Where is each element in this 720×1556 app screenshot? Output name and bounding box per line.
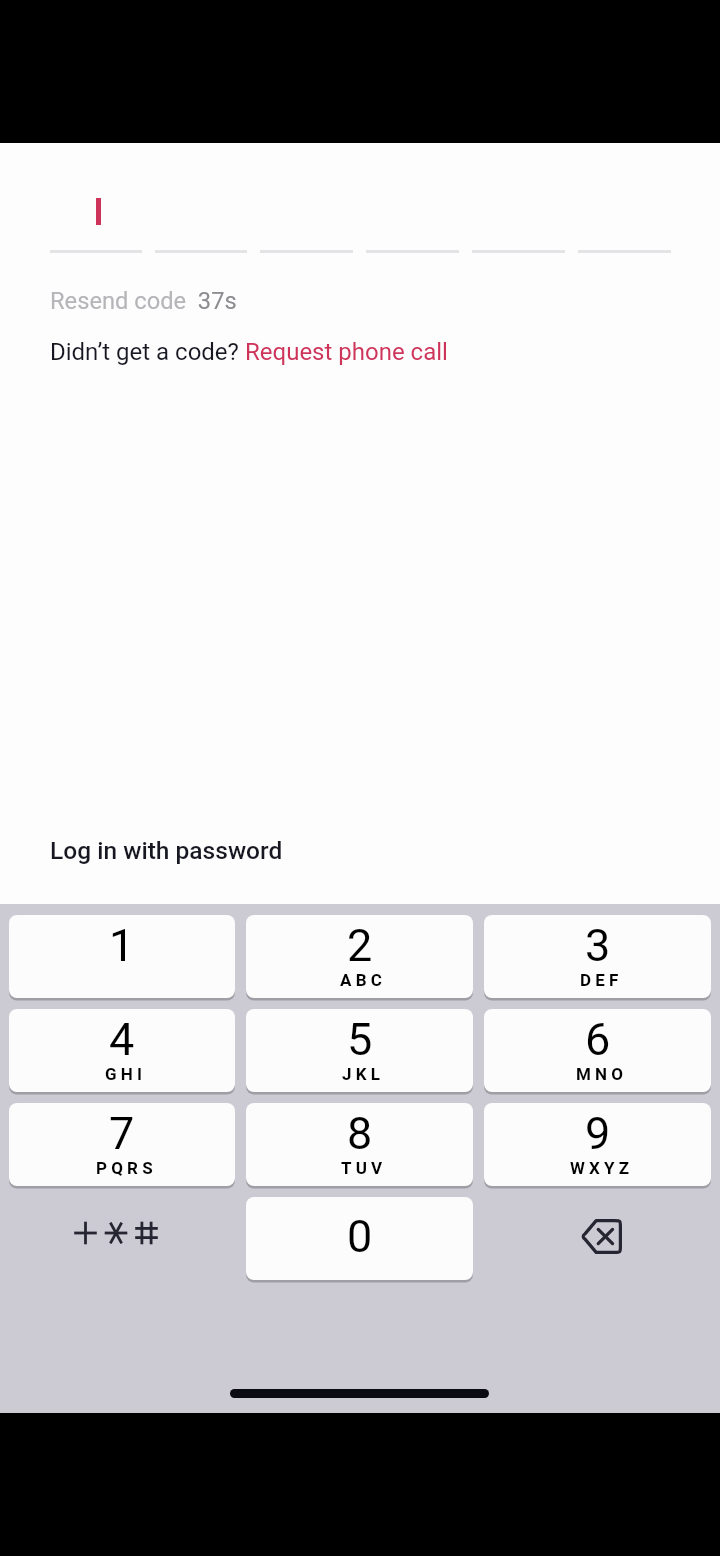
button[interactable]: 0: [246, 1197, 473, 1280]
button[interactable]: 3: [484, 915, 711, 998]
staticText: 0: [347, 1210, 373, 1263]
button[interactable]: 5: [246, 1009, 473, 1092]
button[interactable]: Request phone call: [245, 338, 448, 366]
button[interactable]: 1: [9, 915, 235, 998]
button[interactable]: Plus, star, hash: [9, 1197, 235, 1280]
staticText: 8: [347, 1107, 373, 1160]
button[interactable]: Log in with password: [50, 836, 283, 865]
staticText: 1: [109, 919, 135, 972]
button[interactable]: Resend code 37s: [50, 287, 237, 315]
button[interactable]: 2: [246, 915, 473, 998]
button[interactable]: 6: [484, 1009, 711, 1092]
button[interactable]: 9: [484, 1103, 711, 1186]
staticText: DEF: [580, 970, 623, 990]
staticText: 9: [585, 1107, 611, 1160]
staticText: WXYZ: [570, 1158, 634, 1178]
staticText: Log in with password: [50, 836, 283, 865]
staticText: 4: [109, 1013, 135, 1066]
staticText: TUV: [341, 1158, 387, 1178]
staticText: 3: [585, 919, 611, 972]
staticText: ABC: [340, 970, 387, 990]
staticText: Resend code 37s: [50, 287, 237, 315]
staticText: GHI: [105, 1064, 147, 1084]
staticText: Didn’t get a code?: [50, 338, 245, 366]
staticText: 2: [347, 919, 373, 972]
staticText: MNO: [576, 1064, 628, 1084]
button[interactable]: 8: [246, 1103, 473, 1186]
button[interactable]: Backspace: [484, 1197, 711, 1280]
button[interactable]: 7: [9, 1103, 235, 1186]
staticText: 5: [347, 1013, 373, 1066]
staticText: Request phone call: [245, 338, 448, 366]
button[interactable]: 4: [9, 1009, 235, 1092]
staticText: 6: [585, 1013, 611, 1066]
staticText: PQRS: [96, 1158, 157, 1178]
staticText: 7: [109, 1107, 135, 1160]
staticText: JKL: [342, 1064, 385, 1084]
